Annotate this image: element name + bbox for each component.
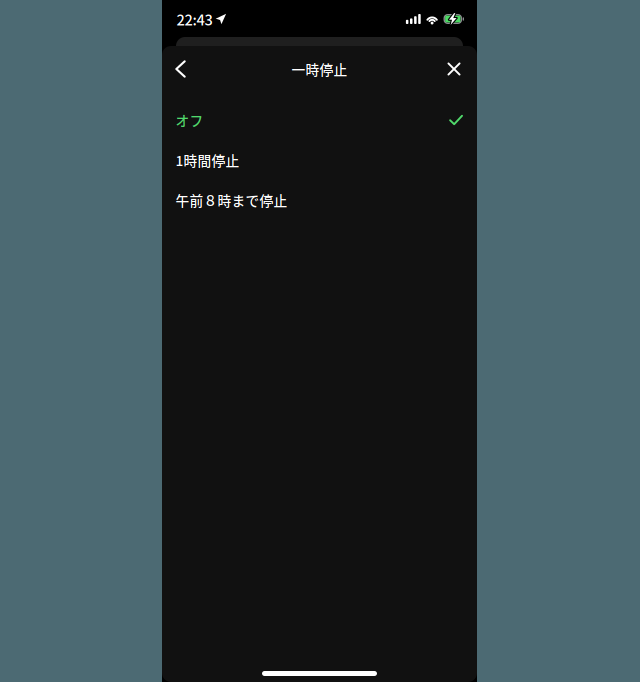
- staticText: 午前８時まで停止: [175, 190, 287, 210]
- button[interactable]: 閉じる: [437, 47, 471, 91]
- button[interactable]: 1時間停止: [162, 140, 477, 180]
- staticText: 1時間停止: [175, 150, 239, 170]
- staticText: オフ: [175, 110, 203, 130]
- staticText: 一時停止: [291, 59, 347, 79]
- button[interactable]: オフ: [162, 100, 477, 140]
- button[interactable]: 戻る: [163, 46, 197, 92]
- button[interactable]: 午前８時まで停止: [162, 180, 477, 220]
- staticText: 22:43: [176, 8, 212, 30]
